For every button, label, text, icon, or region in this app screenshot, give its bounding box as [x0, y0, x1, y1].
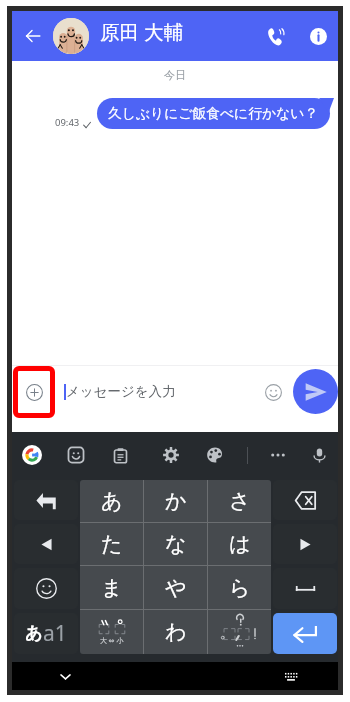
staticText: は	[229, 531, 251, 557]
button[interactable]: な	[144, 523, 207, 565]
button[interactable]: Space	[273, 568, 337, 609]
button[interactable]: Settings	[158, 442, 184, 468]
staticText: わ	[165, 619, 187, 645]
button[interactable]: Details	[303, 21, 333, 51]
button[interactable]: ら	[208, 566, 271, 609]
staticText: さ	[229, 488, 251, 514]
button[interactable]: あ	[80, 480, 143, 522]
button[interactable]: Back	[18, 21, 48, 51]
button[interactable]: More options	[265, 442, 291, 468]
button[interactable]: Cursor right	[273, 524, 337, 564]
staticText: あ	[25, 623, 43, 644]
button[interactable]: Delete	[273, 480, 337, 520]
button[interactable]: Clipboard	[107, 442, 133, 468]
staticText: あ	[101, 488, 123, 514]
button[interactable]: Switch input mode	[14, 613, 78, 654]
button[interactable]: Punctuation	[208, 610, 271, 654]
button[interactable]: Call	[258, 19, 292, 53]
button[interactable]: た	[80, 523, 143, 565]
button[interactable]: さ	[208, 480, 271, 522]
button[interactable]: Emoji	[14, 568, 78, 609]
button[interactable]: か	[144, 480, 207, 522]
button[interactable]: や	[144, 566, 207, 609]
button[interactable]: Hide keyboard	[52, 663, 78, 689]
button[interactable]: Stickers	[63, 442, 89, 468]
staticText: 久しぶりにご飯食べに行かない？	[108, 105, 319, 122]
button[interactable]: わ	[144, 610, 207, 654]
button[interactable]: Backspace word	[14, 480, 78, 520]
button[interactable]: Dakuten and small kana	[80, 610, 143, 654]
button[interactable]: Change keyboard	[278, 663, 304, 689]
staticText: ま	[101, 575, 123, 601]
staticText: 09:43	[55, 116, 80, 129]
staticText: 今日	[164, 68, 186, 82]
staticText: 原田 大輔	[100, 18, 184, 45]
staticText: ら	[229, 575, 251, 601]
button[interactable]: Cursor left	[14, 524, 78, 564]
button[interactable]: Send	[293, 369, 338, 414]
button[interactable]: Enter	[273, 613, 337, 654]
staticText: や	[165, 575, 187, 601]
button[interactable]: Add attachment	[13, 366, 55, 418]
button[interactable]: Theme	[202, 442, 228, 468]
button[interactable]: 久しぶりにご飯食べに行かない？	[97, 98, 334, 129]
button[interactable]: Google search	[19, 442, 45, 468]
button[interactable]: は	[208, 523, 271, 565]
staticText: 大 ⇔ 小	[100, 636, 124, 646]
staticText: な	[165, 531, 187, 557]
staticText: か	[165, 488, 187, 514]
button[interactable]: ま	[80, 566, 143, 609]
staticText: メッセージを入力	[66, 383, 176, 400]
staticText: た	[101, 531, 123, 557]
staticText: a1	[43, 619, 67, 648]
button[interactable]: Emoji	[257, 376, 289, 408]
button[interactable]: Voice input	[306, 442, 332, 468]
